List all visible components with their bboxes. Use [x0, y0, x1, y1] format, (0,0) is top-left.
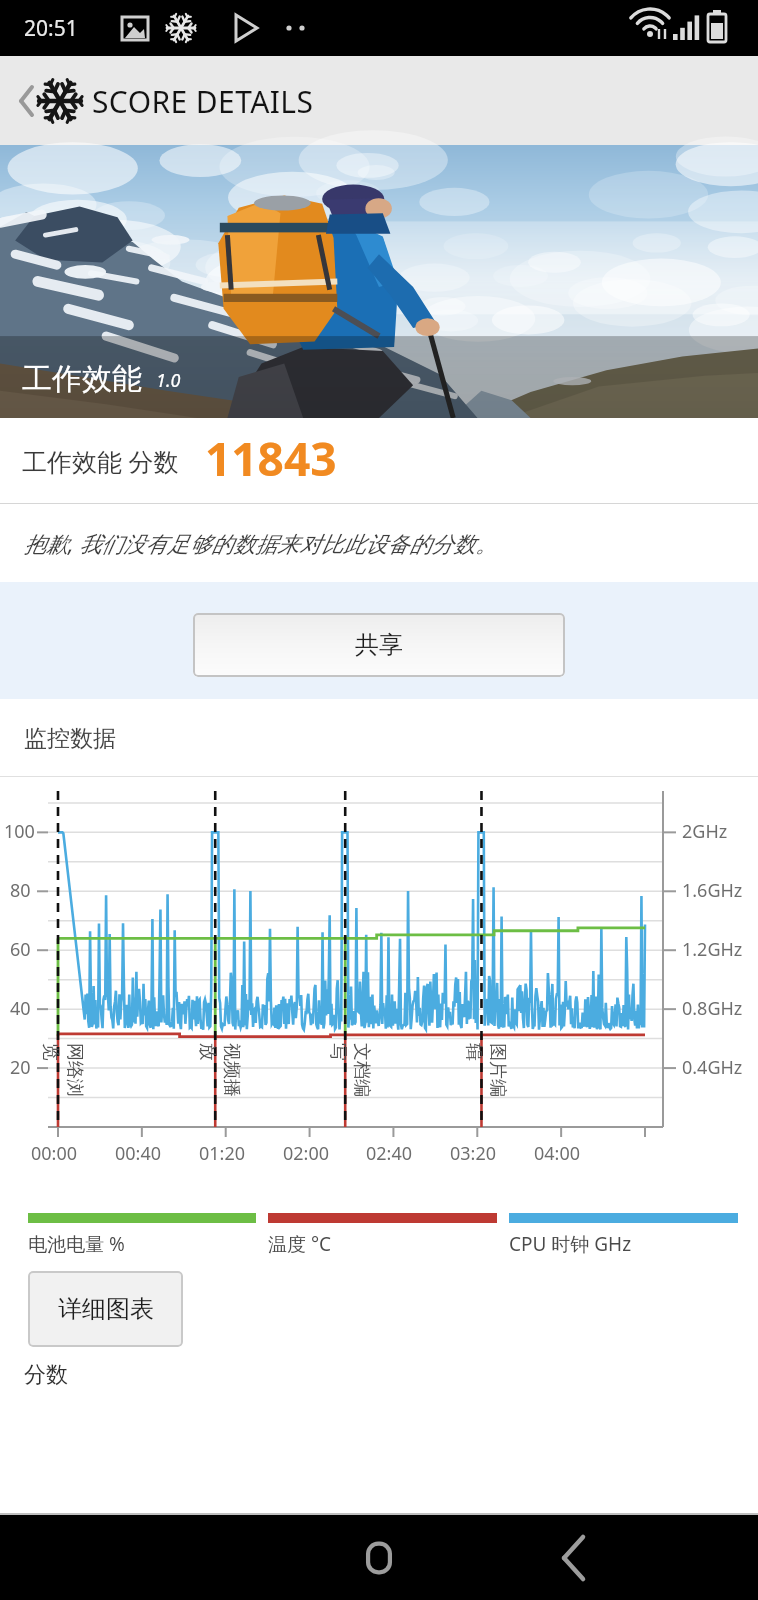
- staticText: 02:00: [283, 1141, 330, 1166]
- staticText: 电池电量 %: [28, 1231, 125, 1257]
- staticText: 0.4GHz: [682, 1055, 743, 1080]
- staticText: 工作效能: [22, 360, 142, 398]
- staticText: 2GHz: [682, 819, 728, 844]
- staticText: 抱歉, 我们没有足够的数据来对比此设备的分数。: [24, 528, 498, 558]
- button[interactable]: 共享: [193, 613, 565, 677]
- button[interactable]: 详细图表: [28, 1271, 183, 1347]
- staticText: 03:20: [450, 1141, 497, 1166]
- staticText: 40: [10, 996, 31, 1021]
- staticText: 0.8GHz: [682, 996, 743, 1021]
- staticText: 分数: [24, 1361, 68, 1389]
- staticText: 工作效能 分数: [22, 444, 179, 478]
- staticText: 文档编写: [327, 1043, 373, 1113]
- staticText: 60: [10, 937, 31, 962]
- staticText: 20: [10, 1055, 31, 1080]
- staticText: SCORE DETAILS: [92, 81, 314, 122]
- staticText: 视频播放: [197, 1043, 243, 1113]
- staticText: 11843: [205, 427, 337, 490]
- staticText: 共享: [355, 630, 403, 660]
- staticText: 80: [10, 878, 31, 903]
- staticText: CPU 时钟 GHz: [509, 1231, 632, 1257]
- staticText: 1.0: [156, 368, 181, 393]
- staticText: 温度 °C: [268, 1231, 332, 1257]
- staticText: 监控数据: [24, 724, 116, 753]
- staticText: 1.2GHz: [682, 937, 743, 962]
- staticText: 00:00: [31, 1141, 78, 1166]
- staticText: 01:20: [199, 1141, 246, 1166]
- staticText: 详细图表: [58, 1294, 154, 1324]
- staticText: 图片编辑: [463, 1043, 509, 1113]
- button[interactable]: Back: [536, 1516, 620, 1600]
- staticText: 100: [4, 819, 35, 844]
- staticText: 1.6GHz: [682, 878, 743, 903]
- button[interactable]: Home: [337, 1516, 421, 1600]
- staticText: 04:00: [534, 1141, 581, 1166]
- other: Back: [8, 79, 38, 123]
- staticText: 20:51: [24, 14, 78, 43]
- staticText: 00:40: [115, 1141, 162, 1166]
- staticText: 02:40: [366, 1141, 413, 1166]
- staticText: 网络浏览: [40, 1043, 86, 1113]
- button[interactable]: Back: [8, 79, 314, 123]
